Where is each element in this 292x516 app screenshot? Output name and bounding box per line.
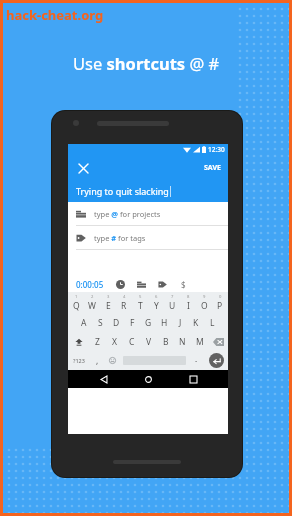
- button[interactable]: Back: [95, 370, 113, 388]
- staticText: C: [129, 336, 135, 348]
- button[interactable]: 3: [100, 292, 116, 313]
- staticText: F: [130, 317, 135, 329]
- staticText: H: [161, 317, 168, 329]
- button[interactable]: Tags: [156, 278, 169, 291]
- button[interactable]: ,: [90, 351, 105, 370]
- button[interactable]: 8: [180, 292, 196, 313]
- staticText: K: [193, 317, 199, 329]
- button[interactable]: F: [124, 313, 140, 332]
- button[interactable]: D: [108, 313, 124, 332]
- button[interactable]: 1: [68, 292, 84, 313]
- button[interactable]: Enter: [209, 353, 224, 368]
- staticText: 2: [91, 294, 94, 300]
- button[interactable]: Close: [74, 159, 92, 177]
- button[interactable]: K: [188, 313, 204, 332]
- button[interactable]: Project: [135, 278, 148, 291]
- staticText: B: [163, 336, 169, 348]
- staticText: Y: [154, 300, 159, 312]
- button[interactable]: 4: [116, 292, 132, 313]
- staticText: T: [138, 300, 143, 312]
- staticText: 6: [155, 294, 158, 300]
- button[interactable]: X: [106, 332, 123, 351]
- staticText: V: [146, 336, 152, 348]
- button[interactable]: Z: [89, 332, 106, 351]
- button[interactable]: Shift: [68, 332, 89, 351]
- button[interactable]: 2: [84, 292, 100, 313]
- button[interactable]: ?123: [68, 351, 90, 370]
- button[interactable]: Emoji: [105, 351, 120, 370]
- button[interactable]: A: [76, 313, 92, 332]
- staticText: I: [187, 300, 190, 312]
- staticText: SAVE: [204, 163, 221, 173]
- staticText: 0: [219, 294, 222, 300]
- staticText: D: [113, 317, 120, 329]
- button[interactable]: C: [123, 332, 140, 351]
- staticText: 9: [203, 294, 206, 300]
- staticText: W: [88, 300, 96, 312]
- staticText: U: [169, 300, 176, 312]
- button[interactable]: 6: [148, 292, 164, 313]
- staticText: N: [179, 336, 186, 348]
- button[interactable]: Timer: [114, 278, 127, 291]
- staticText: 3: [107, 294, 110, 300]
- button[interactable]: Trying to quit slacking: [68, 180, 228, 202]
- staticText: type @ for projects: [94, 209, 161, 219]
- staticText: E: [106, 300, 111, 312]
- staticText: ?123: [73, 357, 85, 364]
- staticText: 8: [187, 294, 190, 300]
- button[interactable]: L: [204, 313, 220, 332]
- button[interactable]: Backspace: [208, 332, 228, 351]
- button[interactable]: N: [174, 332, 191, 351]
- staticText: 12:30: [208, 145, 225, 154]
- staticText: L: [210, 317, 215, 329]
- staticText: M: [196, 336, 204, 348]
- staticText: Q: [73, 300, 80, 312]
- button[interactable]: S: [92, 313, 108, 332]
- staticText: 7: [171, 294, 174, 300]
- staticText: R: [121, 300, 127, 312]
- button[interactable]: B: [157, 332, 174, 351]
- staticText: 4: [123, 294, 126, 300]
- staticText: hack-cheat.org: [6, 6, 104, 24]
- staticText: X: [112, 336, 117, 348]
- staticText: S: [98, 317, 103, 329]
- staticText: -: [195, 356, 198, 366]
- button[interactable]: 0: [212, 292, 228, 313]
- button[interactable]: type # for tags: [68, 226, 228, 249]
- button[interactable]: Home: [139, 370, 157, 388]
- button[interactable]: 7: [164, 292, 180, 313]
- staticText: $: [181, 279, 186, 290]
- staticText: G: [145, 317, 152, 329]
- button[interactable]: M: [191, 332, 208, 351]
- button[interactable]: 5: [132, 292, 148, 313]
- staticText: 0:00:05: [76, 279, 104, 290]
- staticText: P: [217, 300, 223, 312]
- staticText: O: [201, 300, 208, 312]
- staticText: ,: [96, 355, 99, 367]
- button[interactable]: G: [140, 313, 156, 332]
- staticText: Use shortcuts @ #: [73, 52, 220, 74]
- staticText: A: [81, 317, 87, 329]
- staticText: J: [179, 317, 182, 329]
- button[interactable]: Billable: [177, 278, 190, 291]
- button[interactable]: H: [156, 313, 172, 332]
- staticText: Trying to quit slacking: [76, 185, 169, 197]
- button[interactable]: type @ for projects: [68, 202, 228, 225]
- button[interactable]: Recents: [184, 370, 202, 388]
- staticText: 5: [139, 294, 142, 300]
- button[interactable]: V: [140, 332, 157, 351]
- button[interactable]: SAVE: [201, 159, 224, 177]
- button[interactable]: -: [189, 351, 204, 370]
- staticText: 1: [75, 294, 78, 300]
- button[interactable]: 9: [196, 292, 212, 313]
- staticText: Z: [95, 336, 100, 348]
- staticText: type # for tags: [94, 233, 146, 243]
- button[interactable]: J: [172, 313, 188, 332]
